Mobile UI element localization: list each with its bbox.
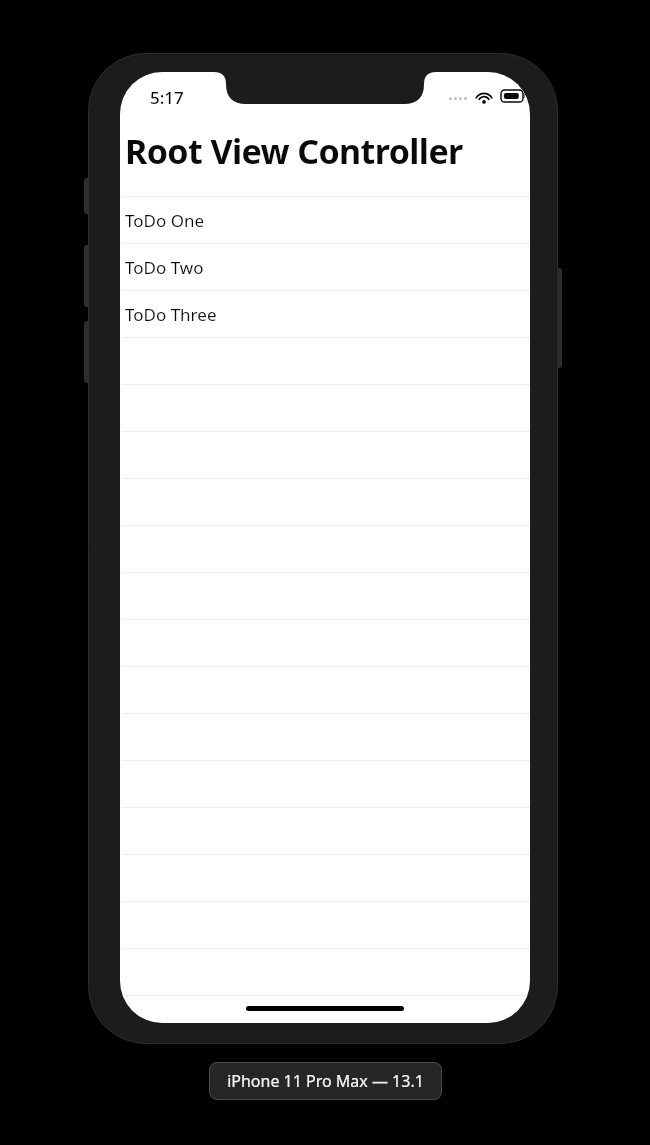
button[interactable]: ToDo One bbox=[120, 197, 530, 243]
staticText: Root View Controller bbox=[125, 128, 463, 174]
staticText: ToDo One bbox=[125, 209, 205, 232]
staticText: ToDo Three bbox=[125, 303, 217, 326]
button[interactable] bbox=[120, 949, 530, 995]
button[interactable]: ToDo Two bbox=[120, 244, 530, 290]
button[interactable]: ToDo Three bbox=[120, 291, 530, 337]
staticText: 5:17 bbox=[150, 86, 184, 109]
button[interactable]: iPhone 11 Pro Max — 13.1 bbox=[209, 1062, 442, 1100]
staticText: ToDo Two bbox=[125, 256, 204, 279]
staticText: iPhone 11 Pro Max — 13.1 bbox=[227, 1070, 424, 1092]
